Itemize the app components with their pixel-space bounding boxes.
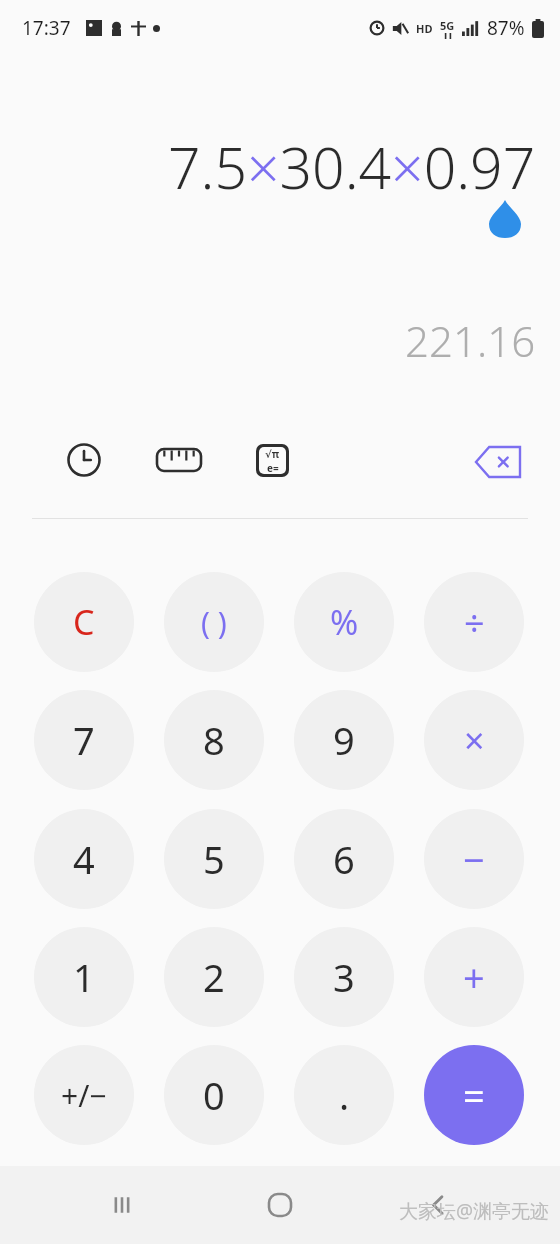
button[interactable]: 1 <box>34 927 134 1027</box>
button[interactable]: Unit converter <box>151 432 207 488</box>
button[interactable]: Backspace <box>468 432 528 492</box>
staticText: C <box>73 599 95 645</box>
staticText: − <box>463 833 485 885</box>
staticText: % <box>330 599 359 645</box>
button[interactable]: 6 <box>294 809 394 909</box>
button[interactable]: Clear <box>34 572 134 672</box>
button[interactable]: Equals <box>424 1045 524 1145</box>
staticText: +/− <box>61 1075 107 1116</box>
button[interactable]: Plus <box>424 927 524 1027</box>
staticText: 5G <box>440 18 455 33</box>
button[interactable]: Recents <box>94 1177 150 1233</box>
staticText: 3 <box>333 951 355 1003</box>
staticText: 8 <box>203 714 225 766</box>
staticText: ÷ <box>464 598 485 647</box>
staticText: × <box>464 716 485 765</box>
staticText: 2 <box>203 951 225 1003</box>
staticText: √π <box>265 447 280 461</box>
button[interactable]: 9 <box>294 690 394 790</box>
button[interactable]: 7 <box>34 690 134 790</box>
button[interactable]: 8 <box>164 690 264 790</box>
staticText: 0 <box>203 1069 225 1121</box>
staticText: 5 <box>203 833 225 885</box>
staticText: + <box>463 951 485 1003</box>
button[interactable]: 2 <box>164 927 264 1027</box>
staticText: 1 <box>73 951 95 1003</box>
staticText: HD <box>416 21 433 36</box>
staticText: 87% <box>487 15 525 41</box>
button[interactable]: Back <box>410 1177 466 1233</box>
staticText: 221.16 <box>405 312 536 369</box>
button[interactable]: 0 <box>164 1045 264 1145</box>
staticText: 大家坛@渊亭无迹 <box>399 1198 550 1224</box>
staticText: 9 <box>333 714 355 766</box>
staticText: e= <box>267 461 279 474</box>
button[interactable]: Home <box>252 1177 308 1233</box>
button[interactable]: Minus <box>424 809 524 909</box>
button[interactable]: Multiply <box>424 690 524 790</box>
button[interactable]: 3 <box>294 927 394 1027</box>
button[interactable]: Sign <box>34 1045 134 1145</box>
staticText: 7 <box>73 714 95 766</box>
button[interactable]: Parentheses <box>164 572 264 672</box>
button[interactable]: Scientific calculator <box>244 432 300 488</box>
button[interactable]: 4 <box>34 809 134 909</box>
staticText: 6 <box>333 833 355 885</box>
staticText: ( ) <box>201 602 227 643</box>
button[interactable]: 5 <box>164 809 264 909</box>
button[interactable]: Decimal point <box>294 1045 394 1145</box>
staticText: 17:37 <box>22 15 71 41</box>
button[interactable]: History <box>56 432 112 488</box>
staticText: . <box>339 1069 350 1121</box>
staticText: 7.5×30.4×0.97 <box>168 128 536 206</box>
staticText: = <box>463 1069 485 1121</box>
button[interactable]: Percent <box>294 572 394 672</box>
button[interactable]: Divide <box>424 572 524 672</box>
staticText: 4 <box>73 833 95 885</box>
